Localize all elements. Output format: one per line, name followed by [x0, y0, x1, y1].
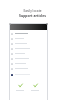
button[interactable] [9, 72, 48, 77]
other: Verified [18, 83, 23, 88]
button[interactable]: Verified [29, 83, 41, 91]
button[interactable] [9, 46, 48, 51]
button[interactable]: Verified [14, 83, 26, 91]
other: Verified [33, 83, 38, 88]
button[interactable] [9, 61, 48, 66]
button[interactable] [9, 66, 48, 71]
staticText: Support articles [19, 13, 46, 18]
staticText: Easily locate [23, 9, 42, 13]
button[interactable] [9, 51, 48, 56]
button[interactable] [9, 56, 48, 61]
button[interactable] [9, 36, 48, 41]
button[interactable] [9, 41, 48, 46]
button[interactable] [9, 31, 48, 36]
